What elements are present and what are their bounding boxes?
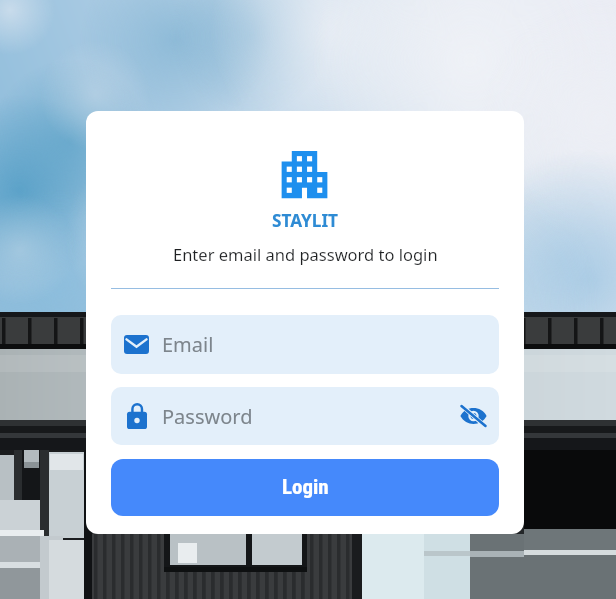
staticText: Email [162,331,214,358]
staticText: STAYLIT [272,209,339,232]
button[interactable]: Login [111,459,499,516]
staticText: Password [162,403,253,430]
button[interactable]: Password [111,387,499,445]
staticText: Enter email and password to login [173,243,438,265]
button[interactable]: Email [111,315,499,374]
staticText: Login [282,475,329,500]
button[interactable]: Show password [456,399,490,433]
